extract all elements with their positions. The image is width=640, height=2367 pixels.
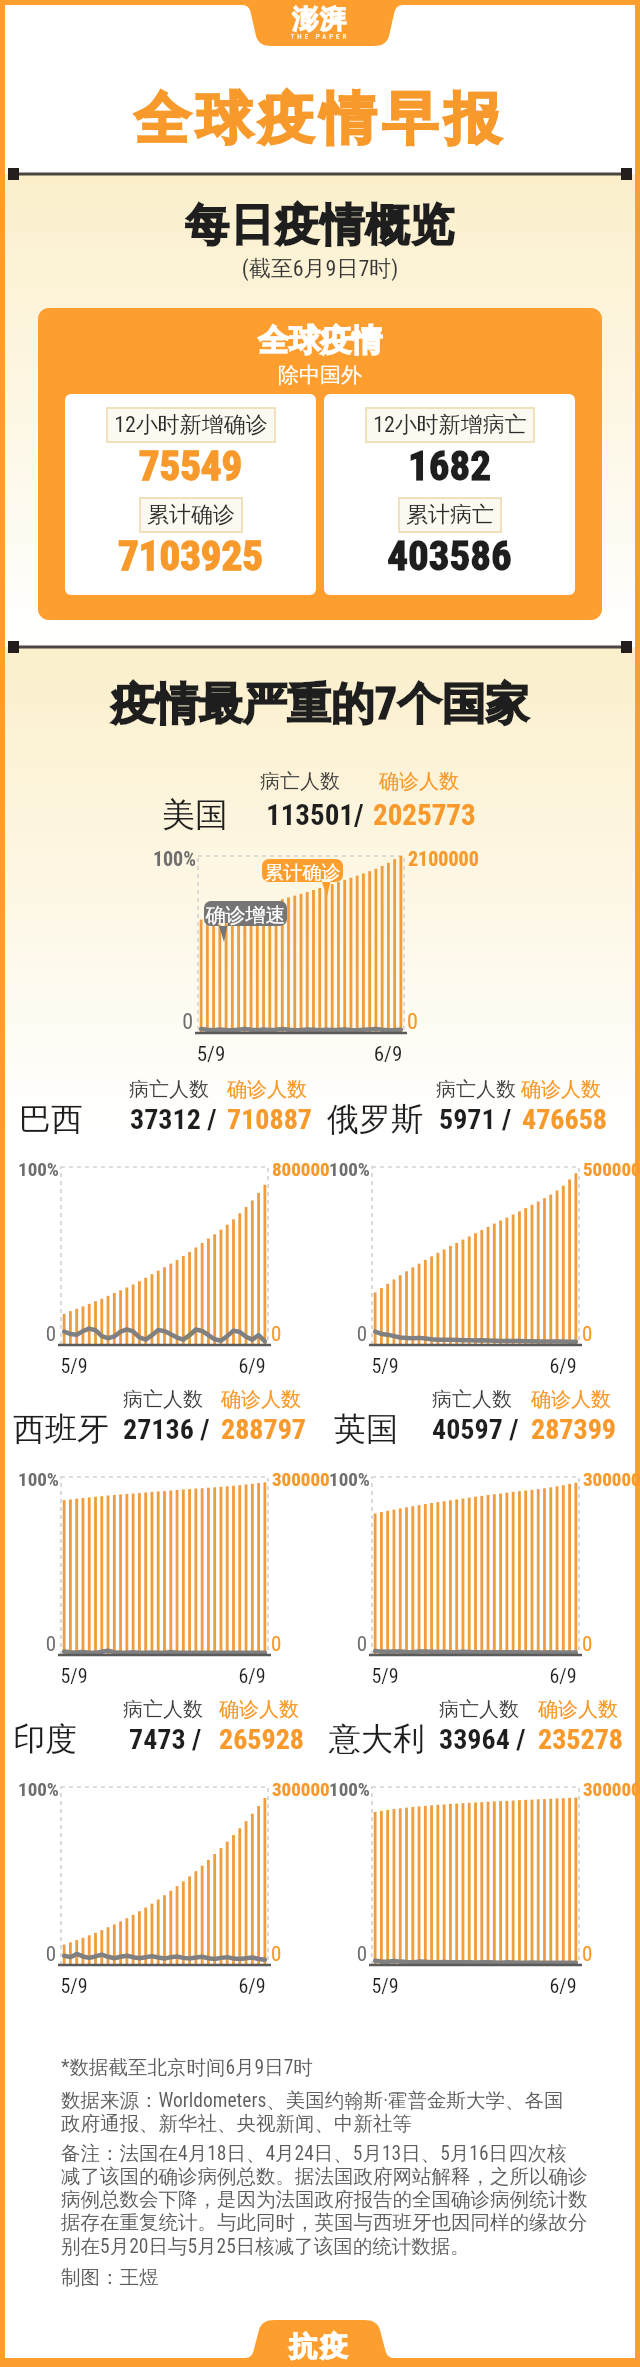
staticText: 2100000 [408,847,479,870]
staticText: 病亡人数 [432,1387,512,1412]
staticText: 累计病亡 [406,501,494,529]
staticText: 全球疫情 [38,321,602,360]
staticText: 5/9 [39,1664,109,1687]
staticText: THE PAPER [0,33,640,41]
staticText: 巴西 [19,1099,83,1139]
staticText: 备注：法国在4月18日、4月24日、5月13日、5月16日四次核 减了该国的确诊… [61,2141,595,2259]
staticText: 病亡人数 [439,1697,519,1722]
staticText: 100% [0,1158,59,1180]
staticText: 300000 [272,1778,330,1800]
staticText: 确诊人数 [227,1077,307,1102]
staticText: 0 [271,1322,282,1347]
staticText: 数据来源：Worldometers、美国约翰斯·霍普金斯大学、各国 政府通报、新… [61,2088,595,2136]
staticText: 100% [0,1468,59,1490]
staticText: 英国 [334,1409,398,1449]
staticText: 5/9 [39,1974,109,1997]
staticText: (截至6月9日7时) [5,255,635,283]
staticText: 235278 [538,1723,623,1756]
staticText: 0 [582,1632,593,1657]
button[interactable]: 12小时新增确诊 [65,394,316,595]
staticText: 12小时新增病亡 [373,411,527,439]
staticText: 6/9 [528,1354,598,1377]
staticText: 100% [0,1778,59,1800]
staticText: 27136 / [123,1413,210,1446]
staticText: 0 [271,1942,282,1967]
staticText: 病亡人数 [129,1077,209,1102]
staticText: 5/9 [350,1354,420,1377]
staticText: 5/9 [350,1974,420,1997]
staticText: 800000 [272,1158,330,1180]
staticText: 意大利 [329,1719,425,1759]
staticText: 累计确诊 [262,861,343,885]
staticText: 印度 [13,1719,77,1759]
staticText: 0 [271,1632,282,1657]
staticText: 确诊人数 [221,1387,301,1412]
staticText: *数据截至北京时间6月9日7时 [61,2055,595,2080]
staticText: 6/9 [528,1664,598,1687]
staticText: 0 [307,1632,367,1657]
staticText: 每日疫情概览 [5,198,635,253]
staticText: 病亡人数 [436,1077,516,1102]
staticText: 0 [0,1322,56,1347]
staticText: 俄罗斯 [327,1099,423,1139]
staticText: 100% [310,1778,370,1800]
staticText: 75549 [65,442,316,490]
staticText: 300000 [583,1468,640,1490]
staticText: 100% [310,1158,370,1180]
staticText: 265928 [219,1723,304,1756]
staticText: 澎湃 [0,3,640,36]
staticText: 确诊人数 [531,1387,611,1412]
staticText: 病亡人数 [123,1697,203,1722]
staticText: 6/9 [217,1354,287,1377]
staticText: 2025773 [373,798,476,832]
staticText: 7473 / [129,1723,202,1756]
staticText: 美国 [162,794,228,836]
staticText: 确诊人数 [379,769,459,794]
staticText: 全球疫情早报 [5,84,635,155]
staticText: 5/9 [176,1042,246,1067]
staticText: 西班牙 [13,1409,109,1449]
staticText: 累计确诊 [147,501,235,529]
staticText: 病亡人数 [123,1387,203,1412]
staticText: 12小时新增确诊 [114,411,268,439]
staticText: 除中国外 [38,362,602,388]
staticText: 0 [0,1632,56,1657]
staticText: 抗疫 [0,2329,640,2364]
staticText: 300000 [272,1468,330,1490]
staticText: 5971 / [439,1103,512,1136]
staticText: 0 [582,1942,593,1967]
staticText: 5/9 [39,1354,109,1377]
staticText: 确诊人数 [538,1697,618,1722]
staticText: 0 [0,1942,56,1967]
staticText: 0 [407,1009,418,1035]
staticText: 6/9 [217,1974,287,1997]
staticText: 疫情最严重的7个国家 [5,677,635,732]
staticText: 制图：王煜 [61,2265,595,2290]
staticText: 113501/ [266,798,364,832]
staticText: 0 [307,1942,367,1967]
staticText: 确诊人数 [521,1077,601,1102]
button[interactable]: 12小时新增病亡 [324,394,575,595]
staticText: 287399 [531,1413,616,1446]
staticText: 病亡人数 [260,769,340,794]
staticText: 33964 / [439,1723,526,1756]
staticText: 0 [133,1009,193,1035]
staticText: 100% [310,1468,370,1490]
staticText: 300000 [583,1778,640,1800]
button[interactable]: 抗疫 [0,2297,640,2367]
staticText: 0 [582,1322,593,1347]
button[interactable]: 澎湃新闻 The Paper [0,0,640,52]
staticText: 6/9 [353,1042,423,1067]
button[interactable]: 全球疫情 [38,308,602,620]
staticText: 6/9 [217,1664,287,1687]
staticText: 1682 [324,442,575,490]
staticText: 确诊人数 [219,1697,299,1722]
staticText: 403586 [324,532,575,580]
staticText: 500000 [583,1158,640,1180]
staticText: 710887 [227,1103,312,1136]
staticText: 0 [307,1322,367,1347]
staticText: 476658 [522,1103,607,1136]
staticText: 40597 / [432,1413,519,1446]
staticText: 确诊增速 [204,903,287,928]
staticText: 7103925 [65,532,316,580]
